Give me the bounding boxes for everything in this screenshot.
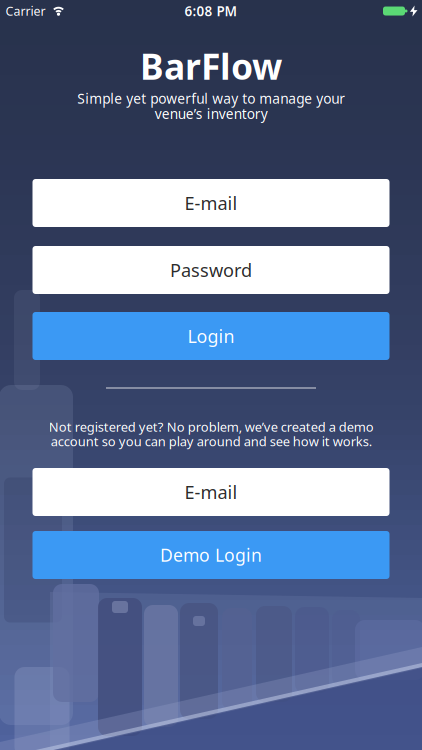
staticText: Password xyxy=(170,258,252,282)
staticText: Not registered yet? No problem, we’ve cr… xyxy=(48,419,373,449)
staticText: 6:08 PM xyxy=(184,2,237,20)
staticText: E-mail xyxy=(184,480,237,504)
staticText: E-mail xyxy=(184,191,237,215)
button[interactable]: Demo Login xyxy=(32,531,389,579)
staticText: Demo Login xyxy=(160,543,262,567)
button[interactable]: E-mail xyxy=(32,179,389,227)
staticText: Login xyxy=(187,324,234,348)
button[interactable]: Password xyxy=(32,246,389,294)
staticText: Simple yet powerful way to manage your v… xyxy=(77,91,345,121)
button[interactable]: Login xyxy=(32,312,389,360)
button[interactable]: E-mail xyxy=(32,468,389,516)
staticText: BarFlow xyxy=(140,42,282,90)
staticText: Carrier xyxy=(5,3,45,19)
